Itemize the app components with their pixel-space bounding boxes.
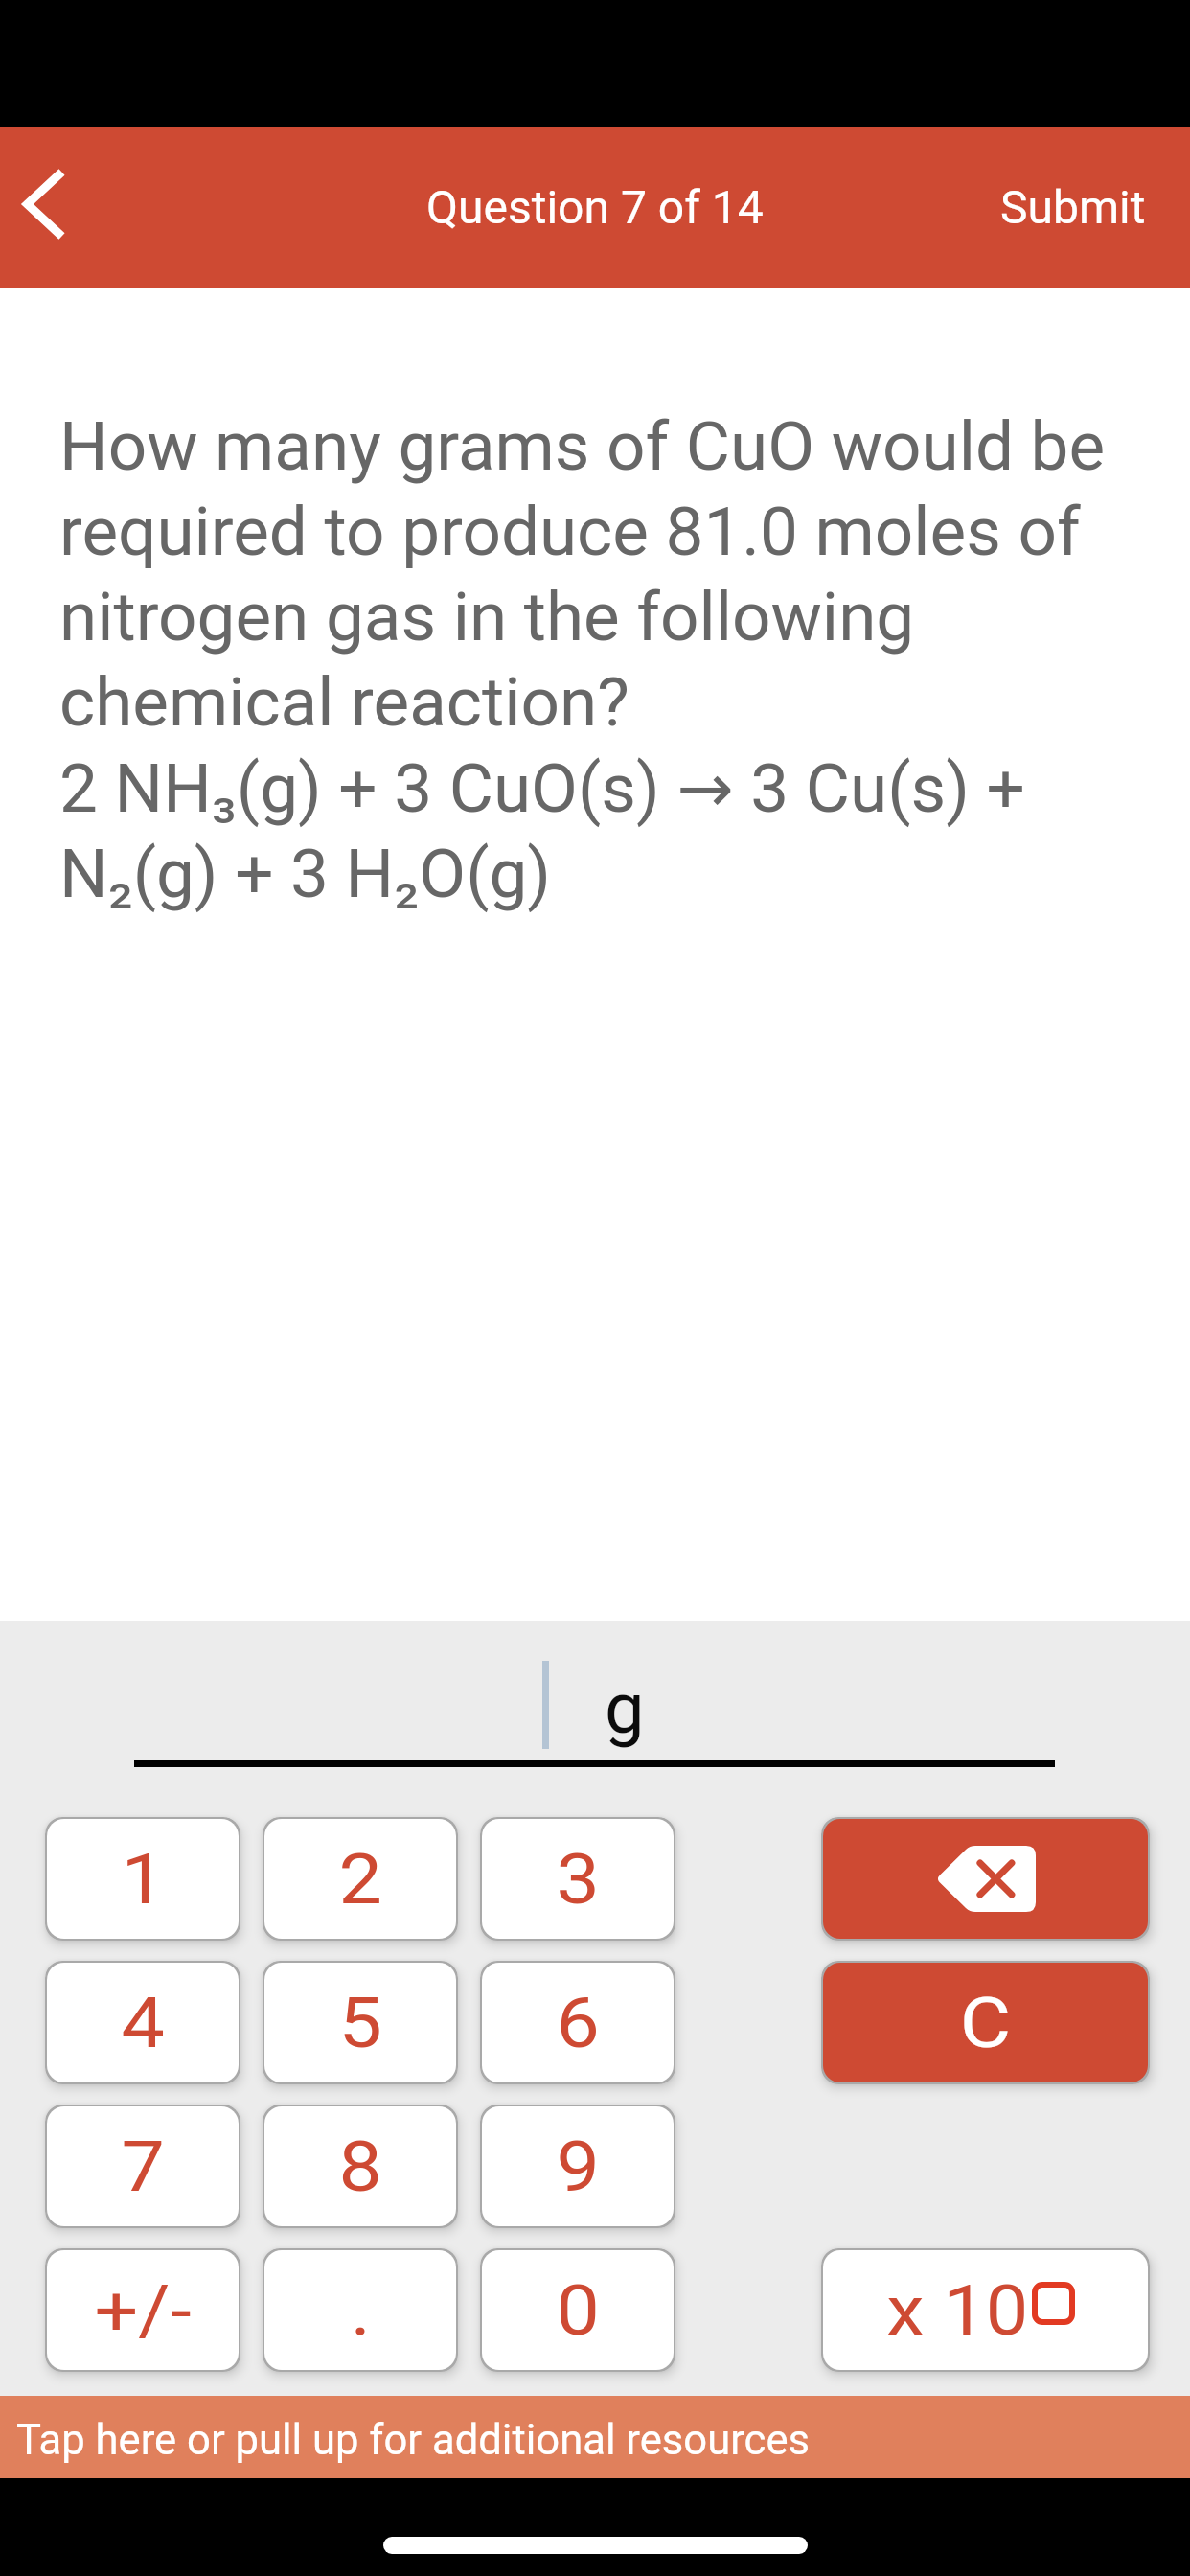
button[interactable]: . — [264, 2250, 456, 2370]
button[interactable]: Submit — [956, 146, 1190, 268]
button[interactable]: 1 — [47, 1819, 239, 1939]
button[interactable]: 2 — [264, 1819, 456, 1939]
button[interactable]: 4 — [47, 1963, 239, 2082]
staticText: g — [605, 1667, 645, 1750]
staticText: 8 — [339, 2127, 383, 2207]
button[interactable]: 8 — [264, 2106, 456, 2226]
button[interactable]: 0 — [482, 2250, 674, 2370]
button[interactable]: +/- — [47, 2250, 239, 2370]
staticText: 3 — [556, 1839, 600, 1920]
staticText: 0 — [556, 2270, 600, 2351]
button[interactable]: x 10 — [823, 2250, 1148, 2370]
staticText: 1 — [121, 1839, 165, 1920]
button[interactable]: Tap here or pull up for additional resou… — [0, 2396, 1190, 2478]
button[interactable]: 5 — [264, 1963, 456, 2082]
button[interactable]: C — [823, 1963, 1148, 2082]
staticText: How many grams of CuO would be required … — [59, 402, 1106, 915]
button[interactable]: Back — [0, 126, 115, 287]
button[interactable]: 9 — [482, 2106, 674, 2226]
staticText: Tap here or pull up for additional resou… — [16, 2416, 811, 2465]
staticText: C — [960, 1983, 1011, 2063]
staticText: Question 7 of 14 — [426, 180, 764, 234]
staticText: 4 — [121, 1983, 165, 2063]
button[interactable]: 7 — [47, 2106, 239, 2226]
button[interactable]: 6 — [482, 1963, 674, 2082]
staticText: x 10 — [887, 2270, 1029, 2351]
staticText: Submit — [1000, 180, 1146, 234]
staticText: 6 — [556, 1983, 600, 2063]
staticText: 2 — [339, 1839, 383, 1920]
staticText: 7 — [121, 2127, 165, 2207]
staticText: . — [351, 2270, 371, 2351]
staticText: 5 — [339, 1983, 383, 2063]
button[interactable]: Backspace — [823, 1819, 1148, 1939]
staticText: 9 — [556, 2127, 600, 2207]
staticText: +/- — [94, 2270, 192, 2351]
button[interactable]: 3 — [482, 1819, 674, 1939]
